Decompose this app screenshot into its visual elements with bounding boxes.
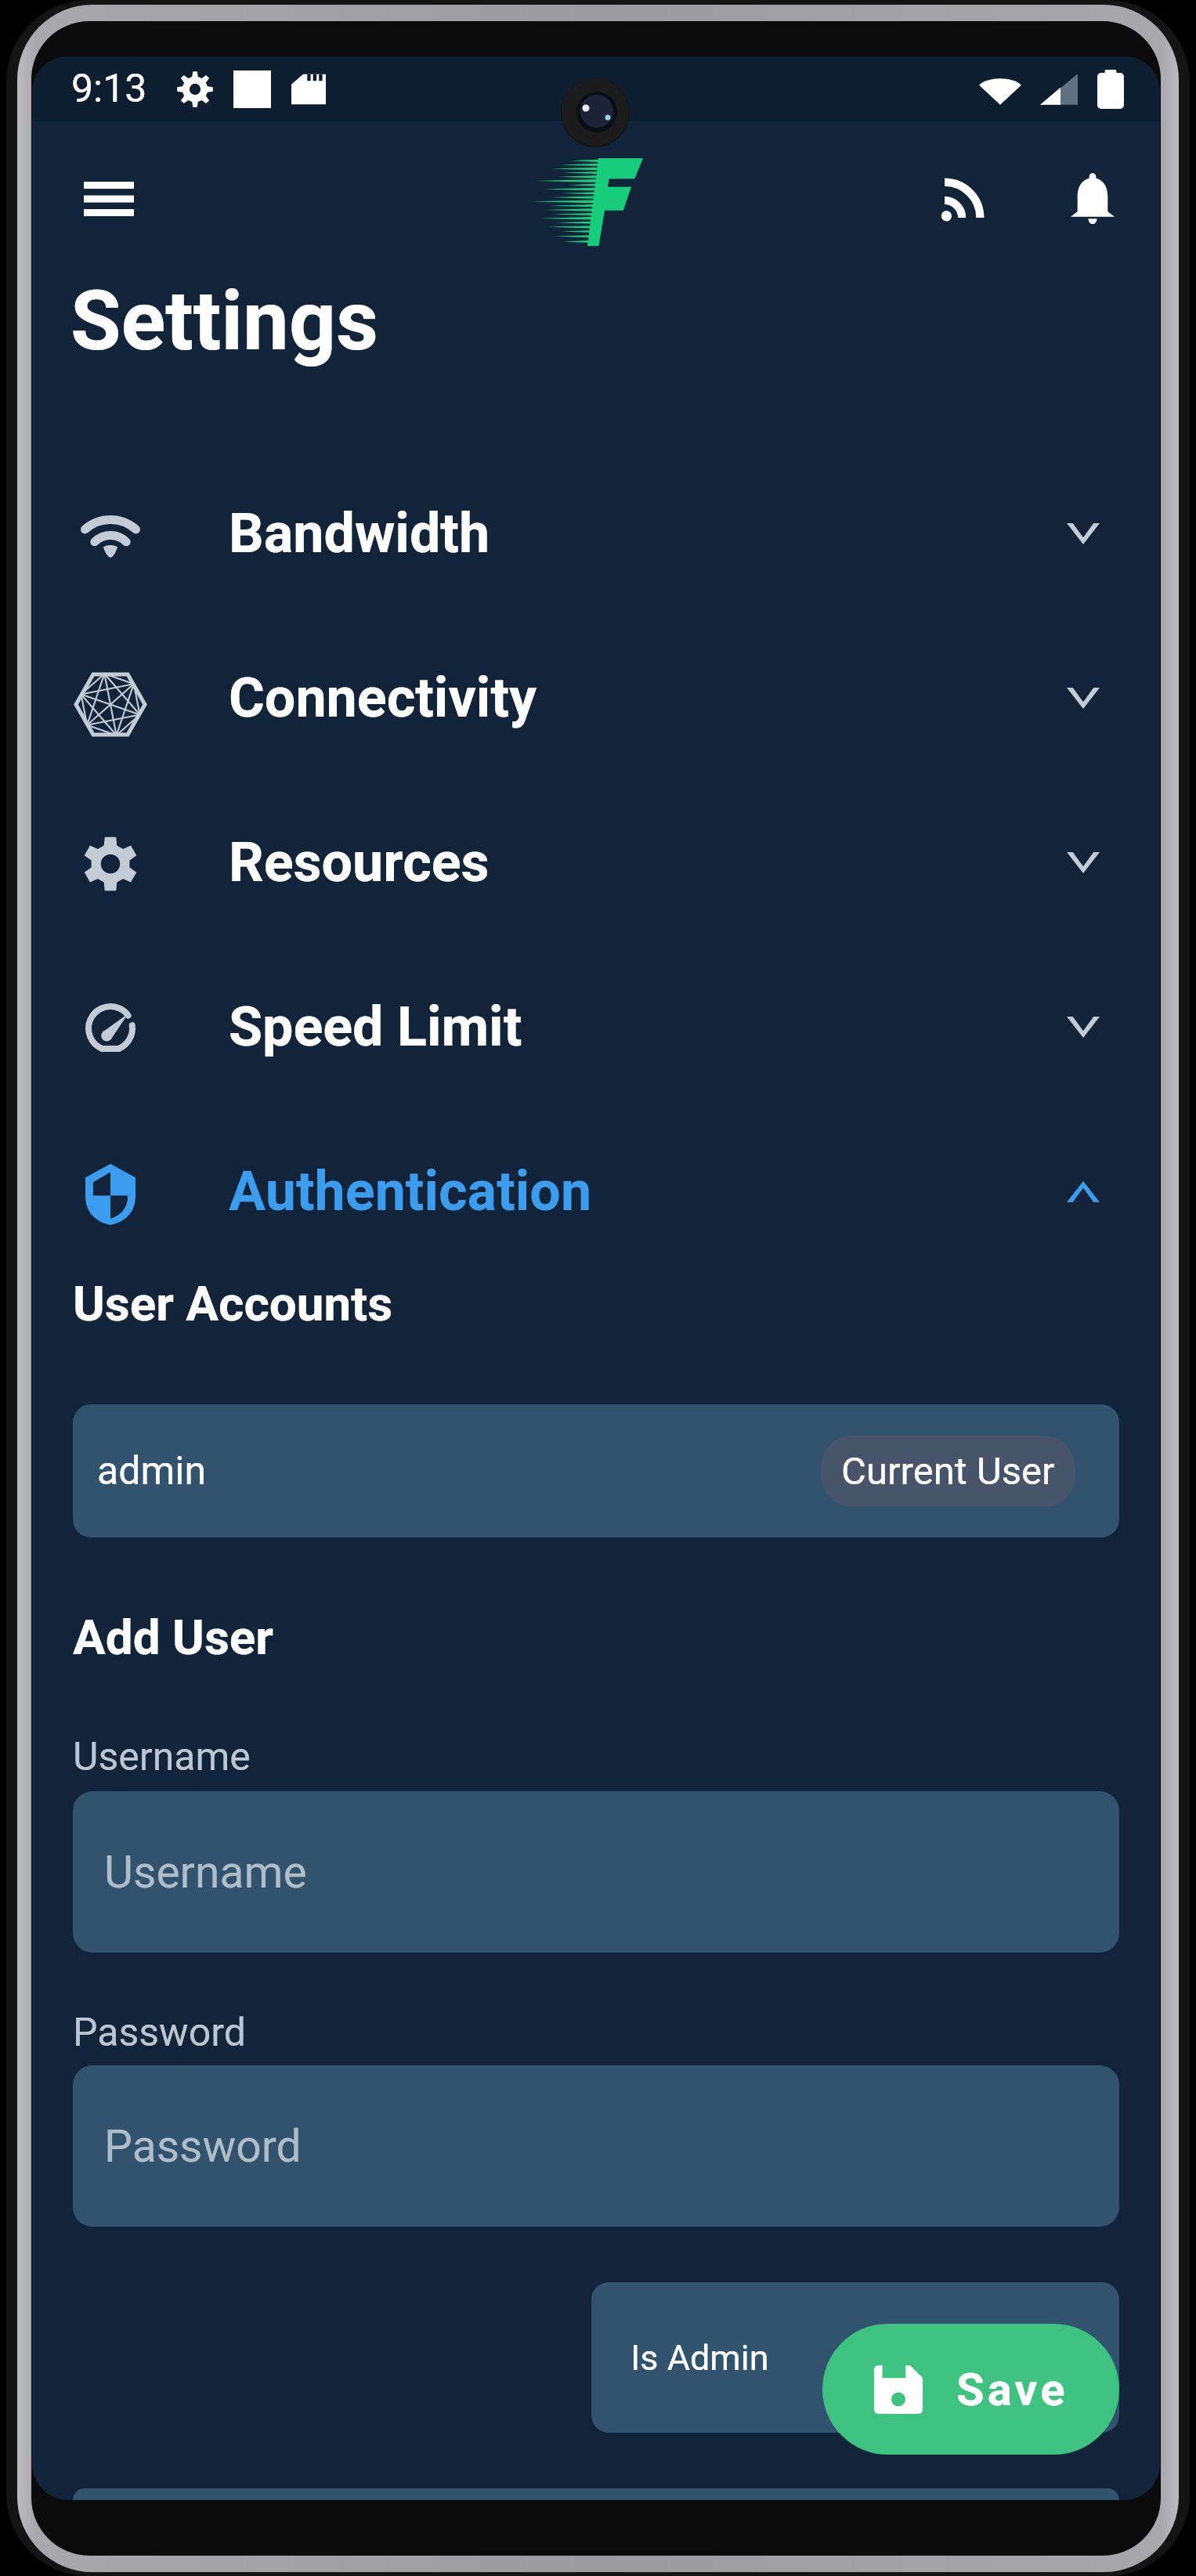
staticText: Password [104, 2120, 302, 2173]
staticText: Username [73, 1734, 251, 1780]
staticText: 9:13 [71, 66, 147, 112]
button[interactable]: Resources [32, 780, 1160, 945]
staticText: admin [97, 1448, 207, 1494]
button[interactable]: RSS feed [923, 160, 1001, 238]
staticText: Settings [70, 273, 378, 370]
button[interactable]: Connectivity [32, 616, 1160, 780]
staticText: Speed Limit [229, 995, 522, 1059]
button[interactable]: Is Admin [591, 2282, 1119, 2433]
button[interactable]: Speed Limit [32, 945, 1160, 1109]
staticText: Connectivity [229, 666, 537, 730]
button[interactable]: Authentication [32, 1109, 1160, 1274]
staticText: Username [104, 1846, 307, 1899]
button[interactable]: Notifications [1053, 161, 1132, 239]
button[interactable]: Save [822, 2324, 1119, 2455]
button[interactable]: Menu [67, 157, 150, 240]
staticText: Password [73, 2010, 246, 2056]
staticText: Add User [73, 1609, 273, 1666]
staticText: Resources [229, 830, 490, 894]
button[interactable]: Bandwidth [32, 451, 1160, 616]
staticText: Bandwidth [229, 501, 490, 565]
button[interactable]: admin [73, 1404, 1119, 1537]
staticText: Is Admin [631, 2337, 769, 2379]
staticText: Current User [841, 1449, 1055, 1494]
staticText: Authentication [229, 1159, 592, 1223]
staticText: Save [956, 2363, 1068, 2416]
button[interactable]: Password [73, 2065, 1119, 2227]
button[interactable]: Username [73, 1791, 1119, 1953]
staticText: User Accounts [73, 1275, 393, 1332]
